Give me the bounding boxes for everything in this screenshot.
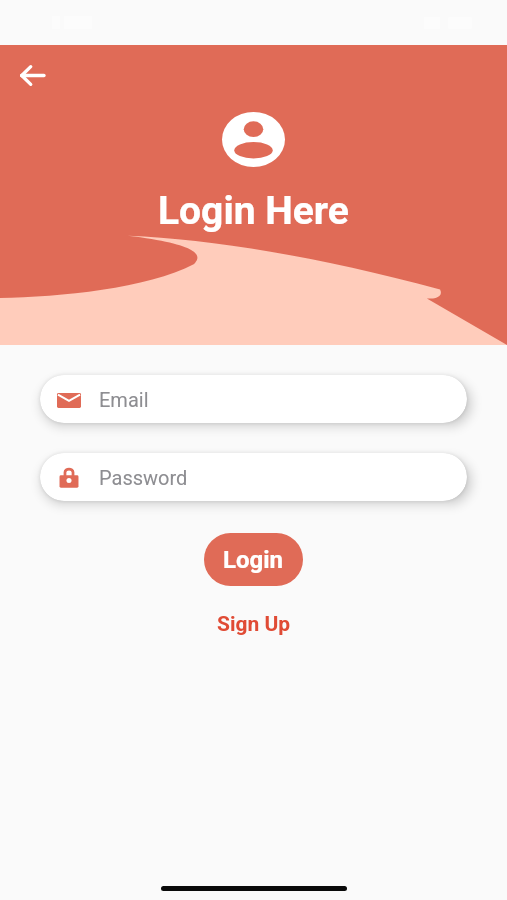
staticText: Sign Up — [217, 612, 291, 637]
button[interactable]: Login — [204, 533, 303, 586]
staticText: Password — [99, 466, 188, 489]
button[interactable]: Password — [40, 453, 467, 501]
staticText: Login Here — [158, 188, 349, 234]
staticText: Email — [99, 388, 149, 411]
button[interactable]: Email — [40, 375, 467, 423]
staticText: Login — [223, 546, 284, 574]
button[interactable]: Sign Up — [207, 606, 301, 643]
button[interactable]: Back — [10, 53, 55, 98]
